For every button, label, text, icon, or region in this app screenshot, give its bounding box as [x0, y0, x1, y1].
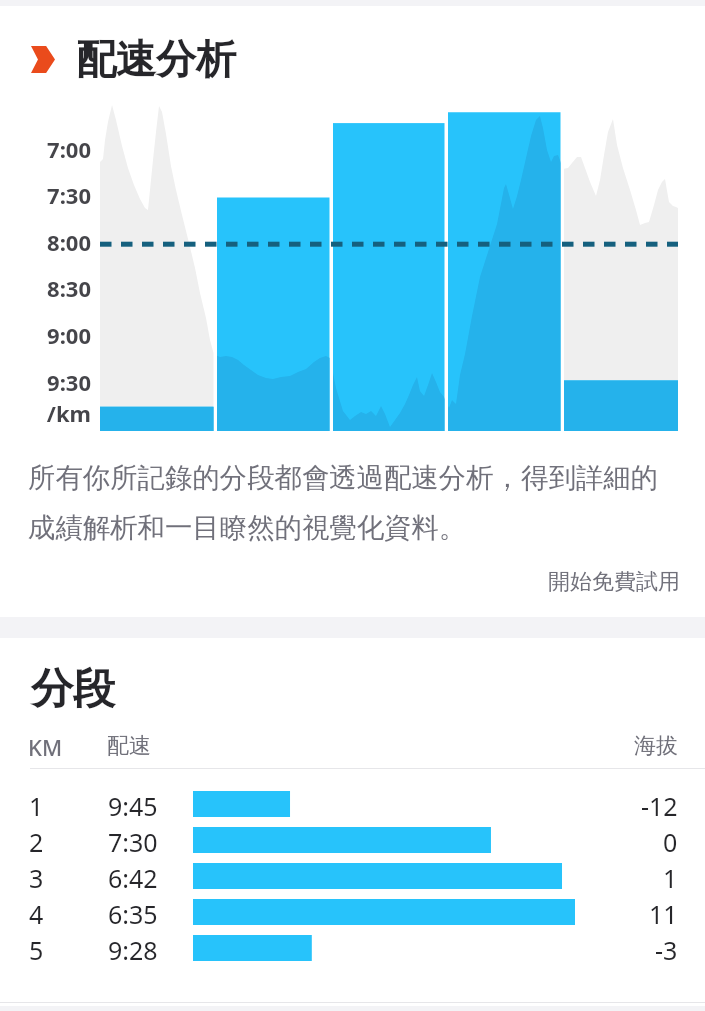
staticText: 3: [29, 861, 44, 895]
staticText: 9:30: [0, 367, 91, 397]
staticText: 9:00: [0, 320, 91, 350]
staticText: KM: [28, 732, 63, 762]
staticText: 1: [29, 789, 44, 823]
staticText: 0: [663, 825, 678, 859]
staticText: 6:35: [108, 897, 158, 931]
button[interactable]: Strava: [0, 24, 705, 94]
button[interactable]: 5: [0, 932, 705, 968]
staticText: 9:45: [108, 789, 158, 823]
other: Strava: [31, 46, 55, 73]
staticText: 7:30: [108, 825, 158, 859]
button[interactable]: 2: [0, 824, 705, 860]
staticText: 9:28: [108, 933, 158, 967]
staticText: -12: [641, 789, 678, 823]
button[interactable]: 4: [0, 896, 705, 932]
staticText: /km: [0, 398, 91, 428]
staticText: 所有你所記錄的分段都會透過配速分析，得到詳細的 成績解析和一目瞭然的視覺化資料。: [28, 461, 658, 545]
staticText: 5: [29, 933, 44, 967]
staticText: 配速分析: [76, 34, 236, 84]
staticText: 配速: [107, 732, 151, 760]
staticText: 8:00: [0, 227, 91, 257]
staticText: 2: [29, 825, 44, 859]
staticText: 海拔: [634, 732, 678, 760]
button[interactable]: 開始免費試用: [528, 563, 705, 601]
staticText: -3: [655, 933, 678, 967]
staticText: 7:00: [0, 134, 91, 164]
staticText: 開始免費試用: [548, 568, 680, 596]
staticText: 分段: [31, 663, 115, 716]
staticText: 4: [29, 897, 44, 931]
staticText: 7:30: [0, 180, 91, 210]
button[interactable]: 3: [0, 860, 705, 896]
staticText: 6:42: [108, 861, 158, 895]
staticText: 1: [663, 861, 678, 895]
button[interactable]: 1: [0, 788, 705, 824]
staticText: 11: [649, 897, 678, 931]
staticText: 8:30: [0, 273, 91, 303]
